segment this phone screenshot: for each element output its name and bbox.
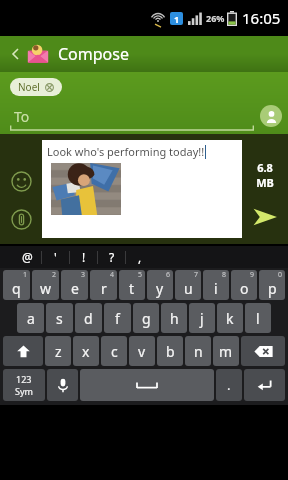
- button[interactable]: .: [216, 369, 242, 401]
- staticText: 6: [166, 270, 171, 280]
- button[interactable]: c: [101, 336, 127, 366]
- button[interactable]: m: [213, 336, 239, 366]
- button[interactable]: Back: [8, 46, 24, 62]
- staticText: 3: [81, 270, 86, 280]
- button[interactable]: Space: [80, 369, 214, 401]
- staticText: y: [156, 279, 164, 298]
- button[interactable]: f: [104, 303, 131, 333]
- button[interactable]: 4: [90, 270, 117, 300]
- staticText: h: [170, 309, 179, 328]
- button[interactable]: 3: [61, 270, 88, 300]
- button[interactable]: j: [189, 303, 215, 333]
- button[interactable]: Look who's performing today!!: [42, 140, 242, 238]
- staticText: 1: [23, 270, 28, 280]
- button[interactable]: z: [45, 336, 71, 366]
- staticText: 123: [16, 373, 32, 385]
- button[interactable]: s: [46, 303, 73, 333]
- button[interactable]: To: [10, 101, 282, 131]
- button[interactable]: 6: [147, 270, 173, 300]
- staticText: 26%: [206, 12, 225, 24]
- staticText: u: [184, 279, 193, 298]
- button[interactable]: 8: [203, 270, 229, 300]
- staticText: Sym: [15, 385, 33, 397]
- button[interactable]: Enter: [244, 369, 285, 401]
- button[interactable]: ': [42, 246, 69, 268]
- button[interactable]: x: [73, 336, 99, 366]
- staticText: k: [226, 309, 234, 328]
- staticText: ,: [138, 249, 142, 265]
- staticText: r: [101, 279, 107, 298]
- staticText: j: [200, 309, 204, 328]
- staticText: q: [12, 279, 21, 298]
- staticText: 9: [250, 270, 255, 280]
- staticText: To: [14, 107, 30, 126]
- button[interactable]: Insert smiley: [8, 168, 34, 194]
- button[interactable]: Noel: [10, 78, 62, 96]
- button[interactable]: Add contact: [260, 105, 282, 127]
- button[interactable]: Back: [0, 36, 288, 72]
- button[interactable]: d: [75, 303, 102, 333]
- staticText: 16:05: [242, 8, 281, 28]
- button[interactable]: k: [217, 303, 243, 333]
- staticText: 7: [194, 270, 199, 280]
- button[interactable]: 123: [3, 369, 45, 401]
- staticText: n: [194, 342, 203, 361]
- button[interactable]: 2: [32, 270, 59, 300]
- staticText: b: [166, 342, 175, 361]
- staticText: Look who's performing today!!: [47, 144, 205, 159]
- staticText: 5: [138, 270, 143, 280]
- button[interactable]: !: [70, 246, 97, 268]
- button[interactable]: 7: [175, 270, 201, 300]
- button[interactable]: Attach: [8, 206, 34, 232]
- staticText: i: [214, 279, 218, 298]
- staticText: 4: [110, 270, 115, 280]
- staticText: Noel: [18, 80, 40, 94]
- button[interactable]: g: [133, 303, 159, 333]
- staticText: z: [55, 342, 62, 361]
- staticText: d: [84, 309, 93, 328]
- staticText: l: [256, 309, 260, 328]
- button[interactable]: v: [129, 336, 155, 366]
- staticText: s: [56, 309, 63, 328]
- button[interactable]: 0: [259, 270, 285, 300]
- button[interactable]: @: [14, 246, 41, 268]
- button[interactable]: 5: [119, 270, 145, 300]
- staticText: t: [129, 279, 135, 298]
- button[interactable]: l: [245, 303, 271, 333]
- staticText: e: [71, 279, 79, 298]
- staticText: 8: [222, 270, 227, 280]
- button[interactable]: 9: [231, 270, 257, 300]
- staticText: g: [142, 309, 151, 328]
- staticText: @: [22, 249, 33, 265]
- button[interactable]: b: [157, 336, 183, 366]
- button[interactable]: ,: [126, 246, 153, 268]
- staticText: v: [138, 342, 146, 361]
- button[interactable]: Shift: [3, 336, 43, 366]
- staticText: 6.8: [257, 160, 273, 175]
- button[interactable]: Voice input: [47, 369, 78, 401]
- staticText: f: [115, 309, 120, 328]
- staticText: c: [111, 342, 118, 361]
- staticText: ?: [109, 249, 115, 265]
- staticText: MB: [256, 175, 274, 190]
- staticText: Compose: [58, 43, 129, 65]
- staticText: ': [54, 249, 57, 265]
- button[interactable]: Backspace: [241, 336, 285, 366]
- staticText: 1: [174, 13, 180, 25]
- staticText: o: [240, 279, 249, 298]
- staticText: m: [219, 342, 233, 361]
- staticText: .: [227, 376, 231, 394]
- button[interactable]: Send: [248, 200, 282, 234]
- button[interactable]: h: [161, 303, 187, 333]
- staticText: w: [40, 279, 52, 298]
- button[interactable]: 1: [3, 270, 30, 300]
- staticText: x: [82, 342, 90, 361]
- button[interactable]: n: [185, 336, 211, 366]
- button[interactable]: a: [17, 303, 44, 333]
- staticText: p: [268, 279, 277, 298]
- staticText: a: [27, 309, 35, 328]
- staticText: 0: [278, 270, 283, 280]
- staticText: !: [82, 249, 86, 265]
- staticText: 2: [52, 270, 57, 280]
- button[interactable]: ?: [98, 246, 125, 268]
